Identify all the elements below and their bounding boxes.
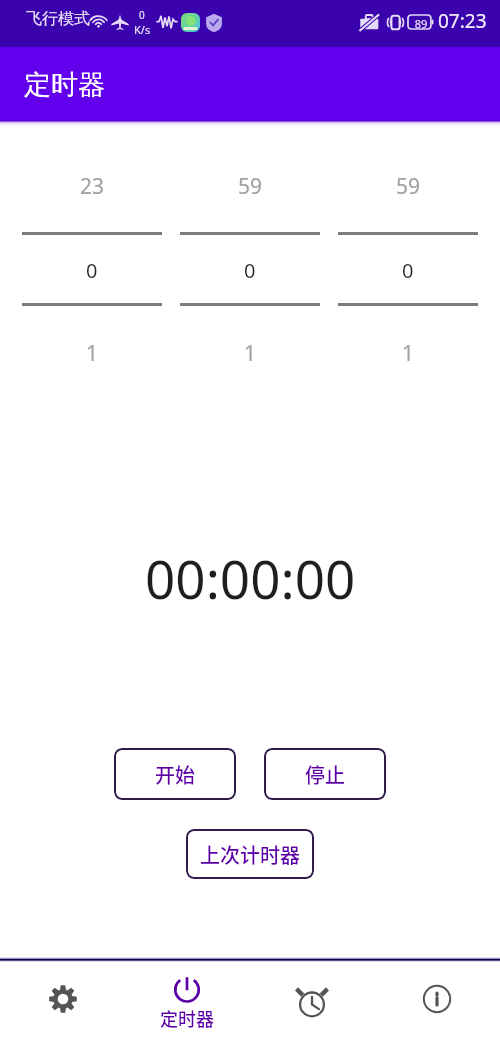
staticText: 开始 <box>155 760 195 789</box>
staticText: 59 <box>238 172 263 200</box>
staticText: 1 <box>402 339 415 367</box>
staticText: 0 <box>86 257 98 284</box>
staticText: 0 <box>402 257 414 284</box>
staticText: 07:23 <box>438 8 487 34</box>
button[interactable]: Settings <box>31 969 95 1029</box>
button[interactable]: 上次计时器 <box>186 829 314 879</box>
staticText: 89 <box>411 16 431 31</box>
staticText: 定时器 <box>24 68 105 102</box>
staticText: 59 <box>396 172 421 200</box>
button[interactable]: Alarm <box>280 972 344 1032</box>
staticText: 定时器 <box>160 1005 214 1031</box>
button[interactable]: 停止 <box>264 748 386 800</box>
button[interactable]: Info <box>405 969 469 1029</box>
staticText: 23 <box>80 172 105 200</box>
staticText: 1 <box>86 339 99 367</box>
staticText: K/s <box>134 22 151 37</box>
staticText: 停止 <box>305 760 345 789</box>
staticText: 00:00:00 <box>145 542 356 614</box>
staticText: 飞行模式 <box>26 9 90 29</box>
button[interactable]: 定时器 <box>142 962 232 1038</box>
staticText: 1 <box>244 339 257 367</box>
button[interactable]: 开始 <box>114 748 236 800</box>
staticText: 0 <box>244 257 256 284</box>
staticText: 0 <box>139 8 145 22</box>
staticText: 上次计时器 <box>200 840 300 869</box>
